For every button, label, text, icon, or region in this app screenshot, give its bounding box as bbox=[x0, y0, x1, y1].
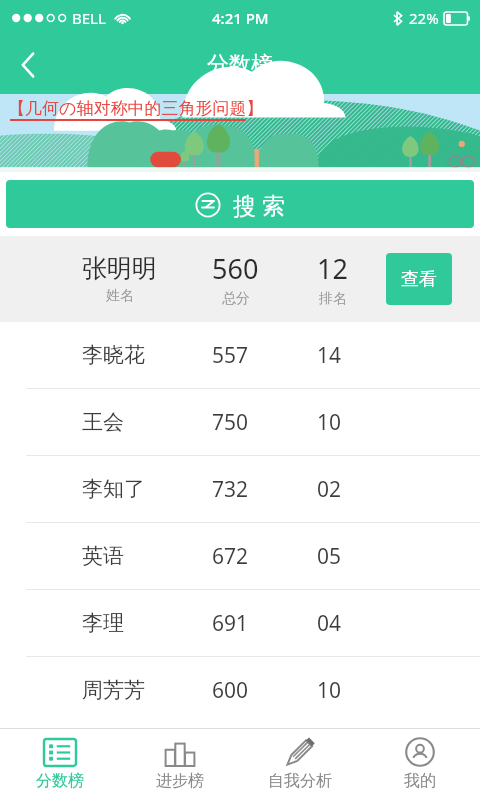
button[interactable]: 自我分析 bbox=[240, 729, 360, 800]
staticText: 560 bbox=[212, 250, 259, 287]
staticText: 李理 bbox=[82, 610, 124, 636]
staticText: 王会 bbox=[82, 409, 124, 435]
staticText: 02 bbox=[317, 475, 342, 504]
button[interactable]: 李理 bbox=[0, 590, 480, 656]
staticText: 10 bbox=[317, 676, 342, 705]
staticText: 4:21 PM bbox=[212, 8, 269, 28]
staticText: 22% bbox=[409, 8, 439, 28]
staticText: 李晓花 bbox=[82, 342, 145, 368]
staticText: 李知了 bbox=[82, 476, 145, 502]
staticText: 【几何の轴对称中的三角形问题】 bbox=[8, 98, 264, 119]
staticText: 自我分析 bbox=[268, 771, 332, 791]
staticText: 672 bbox=[212, 542, 249, 571]
button[interactable]: 李知了 bbox=[0, 456, 480, 522]
button[interactable]: 查看 bbox=[386, 253, 452, 305]
staticText: 英语 bbox=[82, 543, 124, 569]
button[interactable]: 张明明 bbox=[0, 236, 480, 322]
staticText: 05 bbox=[317, 542, 342, 571]
button[interactable]: 英语 bbox=[0, 523, 480, 589]
staticText: 姓名 bbox=[106, 287, 134, 305]
staticText: 总分 bbox=[222, 290, 250, 308]
staticText: BELL bbox=[72, 8, 106, 28]
button[interactable]: Back bbox=[0, 37, 56, 93]
button[interactable]: 分数榜 bbox=[0, 729, 120, 800]
button[interactable]: 进步榜 bbox=[120, 729, 240, 800]
button[interactable]: 李晓花 bbox=[0, 322, 480, 388]
staticText: 14 bbox=[317, 341, 342, 370]
staticText: 04 bbox=[317, 609, 342, 638]
staticText: 557 bbox=[212, 341, 249, 370]
staticText: 进步榜 bbox=[156, 771, 204, 791]
staticText: 张明明 bbox=[82, 253, 157, 284]
staticText: 10 bbox=[317, 408, 342, 437]
staticText: 分数榜 bbox=[207, 51, 273, 79]
staticText: 搜 索 bbox=[233, 189, 285, 220]
staticText: 周芳芳 bbox=[82, 677, 145, 703]
staticText: 600 bbox=[212, 676, 249, 705]
staticText: 分数榜 bbox=[36, 771, 84, 791]
staticText: 查看 bbox=[401, 268, 437, 291]
staticText: 691 bbox=[212, 609, 249, 638]
staticText: 750 bbox=[212, 408, 249, 437]
staticText: 排名 bbox=[319, 290, 347, 308]
staticText: 我的 bbox=[404, 771, 436, 791]
button[interactable]: 周芳芳 bbox=[0, 657, 480, 723]
staticText: 12 bbox=[317, 250, 348, 287]
button[interactable]: 搜 索 bbox=[6, 180, 474, 228]
button[interactable]: 我的 bbox=[360, 729, 480, 800]
staticText: 732 bbox=[212, 475, 249, 504]
button[interactable]: 王会 bbox=[0, 389, 480, 455]
